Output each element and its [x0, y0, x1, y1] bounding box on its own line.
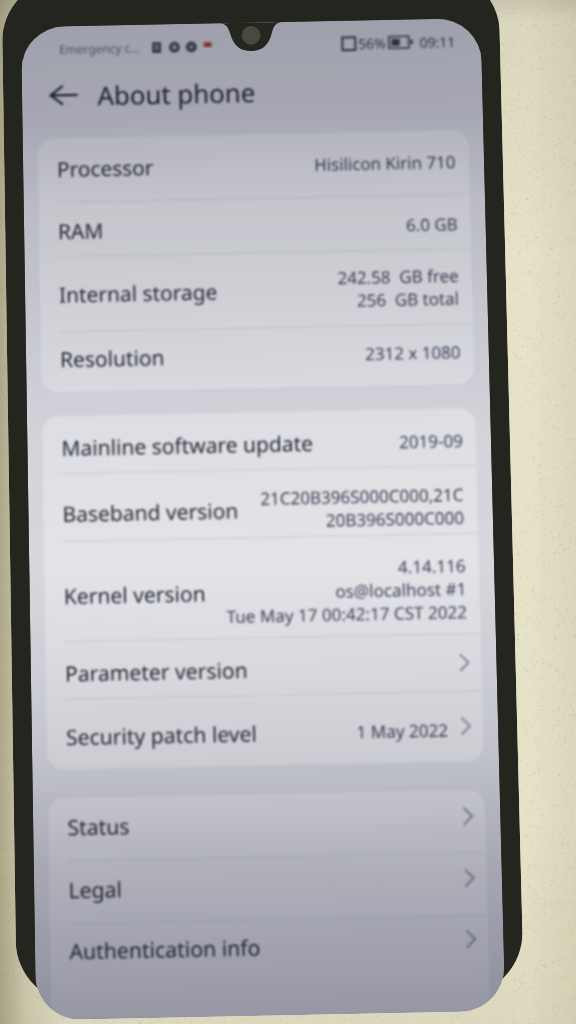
staticText: 242.58 GB free: [337, 264, 459, 289]
button[interactable]: RAM: [39, 194, 471, 257]
staticText: RAM: [58, 217, 104, 246]
staticText: Kernel version: [64, 579, 206, 611]
staticText: Legal: [68, 875, 122, 905]
staticText: Mainline software update: [61, 429, 313, 463]
staticText: Hisilicon Kirin 710: [314, 150, 456, 176]
staticText: 21C20B396S000C000,21C: [260, 483, 465, 510]
staticText: Baseband version: [62, 496, 239, 529]
button[interactable]: Security patch level: [46, 691, 484, 770]
staticText: os@localhost #1: [335, 577, 467, 603]
staticText: 256 GB total: [357, 287, 460, 312]
button[interactable]: Back: [44, 75, 84, 115]
staticText: 56%: [358, 34, 386, 53]
button[interactable]: Kernel version: [44, 534, 481, 643]
staticText: Security patch level: [66, 719, 257, 752]
staticText: 2019-09: [399, 429, 463, 453]
staticText: 6.0 GB: [406, 212, 458, 236]
button[interactable]: Authentication info: [50, 916, 489, 988]
staticText: 09:11: [419, 32, 455, 52]
staticText: Processor: [57, 153, 154, 184]
staticText: 1 May 2022: [356, 718, 449, 743]
button[interactable]: Parameter version: [45, 634, 482, 700]
staticText: Resolution: [60, 343, 165, 374]
staticText: Authentication info: [69, 933, 261, 967]
button[interactable]: Baseband version: [43, 466, 478, 542]
staticText: 4.14.116: [398, 554, 466, 578]
button[interactable]: Internal storage: [39, 249, 473, 333]
button[interactable]: Mainline software update: [42, 408, 477, 474]
staticText: Tue May 17 00:42:17 CST 2022: [226, 600, 467, 628]
staticText: 2312 x 1080: [365, 340, 461, 365]
staticText: About phone: [97, 75, 256, 112]
button[interactable]: Legal: [49, 853, 488, 925]
button[interactable]: Processor: [38, 130, 470, 203]
staticText: Internal storage: [59, 278, 218, 310]
staticText: 20B396S000C000: [326, 506, 465, 532]
staticText: Status: [67, 812, 130, 842]
button[interactable]: Status: [48, 789, 486, 862]
staticText: Parameter version: [65, 656, 248, 689]
staticText: Emergency c...: [59, 39, 140, 57]
button[interactable]: Resolution: [41, 324, 475, 392]
